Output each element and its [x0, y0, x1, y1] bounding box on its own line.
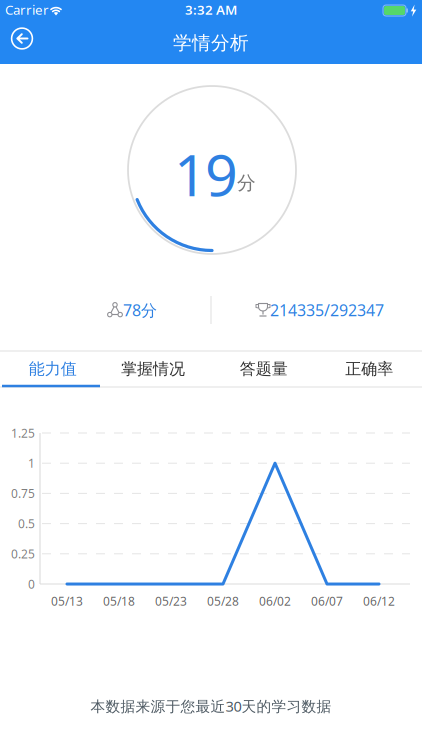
- staticText: 分: [237, 171, 256, 194]
- staticText: 0.25: [11, 546, 35, 562]
- staticText: 214335/292347: [270, 299, 384, 321]
- staticText: 05/23: [155, 593, 187, 609]
- staticText: 1: [28, 455, 35, 471]
- staticText: 3:32 AM: [185, 1, 237, 18]
- staticText: 学情分析: [173, 31, 249, 54]
- staticText: 06/02: [259, 593, 291, 609]
- staticText: 本数据来源于您最近30天的学习数据: [90, 696, 331, 716]
- staticText: 78分: [123, 299, 157, 321]
- staticText: 19: [174, 136, 238, 212]
- staticText: 06/07: [311, 593, 343, 609]
- staticText: 0.75: [11, 485, 35, 501]
- button[interactable]: 答题量: [211, 351, 316, 386]
- staticText: 答题量: [240, 359, 288, 379]
- staticText: 05/28: [207, 593, 239, 609]
- staticText: 掌握情况: [121, 359, 185, 379]
- button[interactable]: 正确率: [316, 351, 422, 386]
- staticText: Carrier: [5, 1, 49, 18]
- staticText: 正确率: [345, 359, 393, 379]
- button[interactable]: 能力值: [0, 351, 105, 386]
- staticText: 1.25: [11, 425, 35, 441]
- staticText: 05/13: [51, 593, 83, 609]
- staticText: 06/12: [363, 593, 395, 609]
- staticText: 0: [28, 576, 35, 592]
- staticText: 05/18: [103, 593, 135, 609]
- button[interactable]: Back: [7, 23, 37, 53]
- button[interactable]: 掌握情况: [100, 351, 206, 386]
- staticText: 能力值: [29, 359, 77, 379]
- staticText: 0.5: [18, 516, 35, 531]
